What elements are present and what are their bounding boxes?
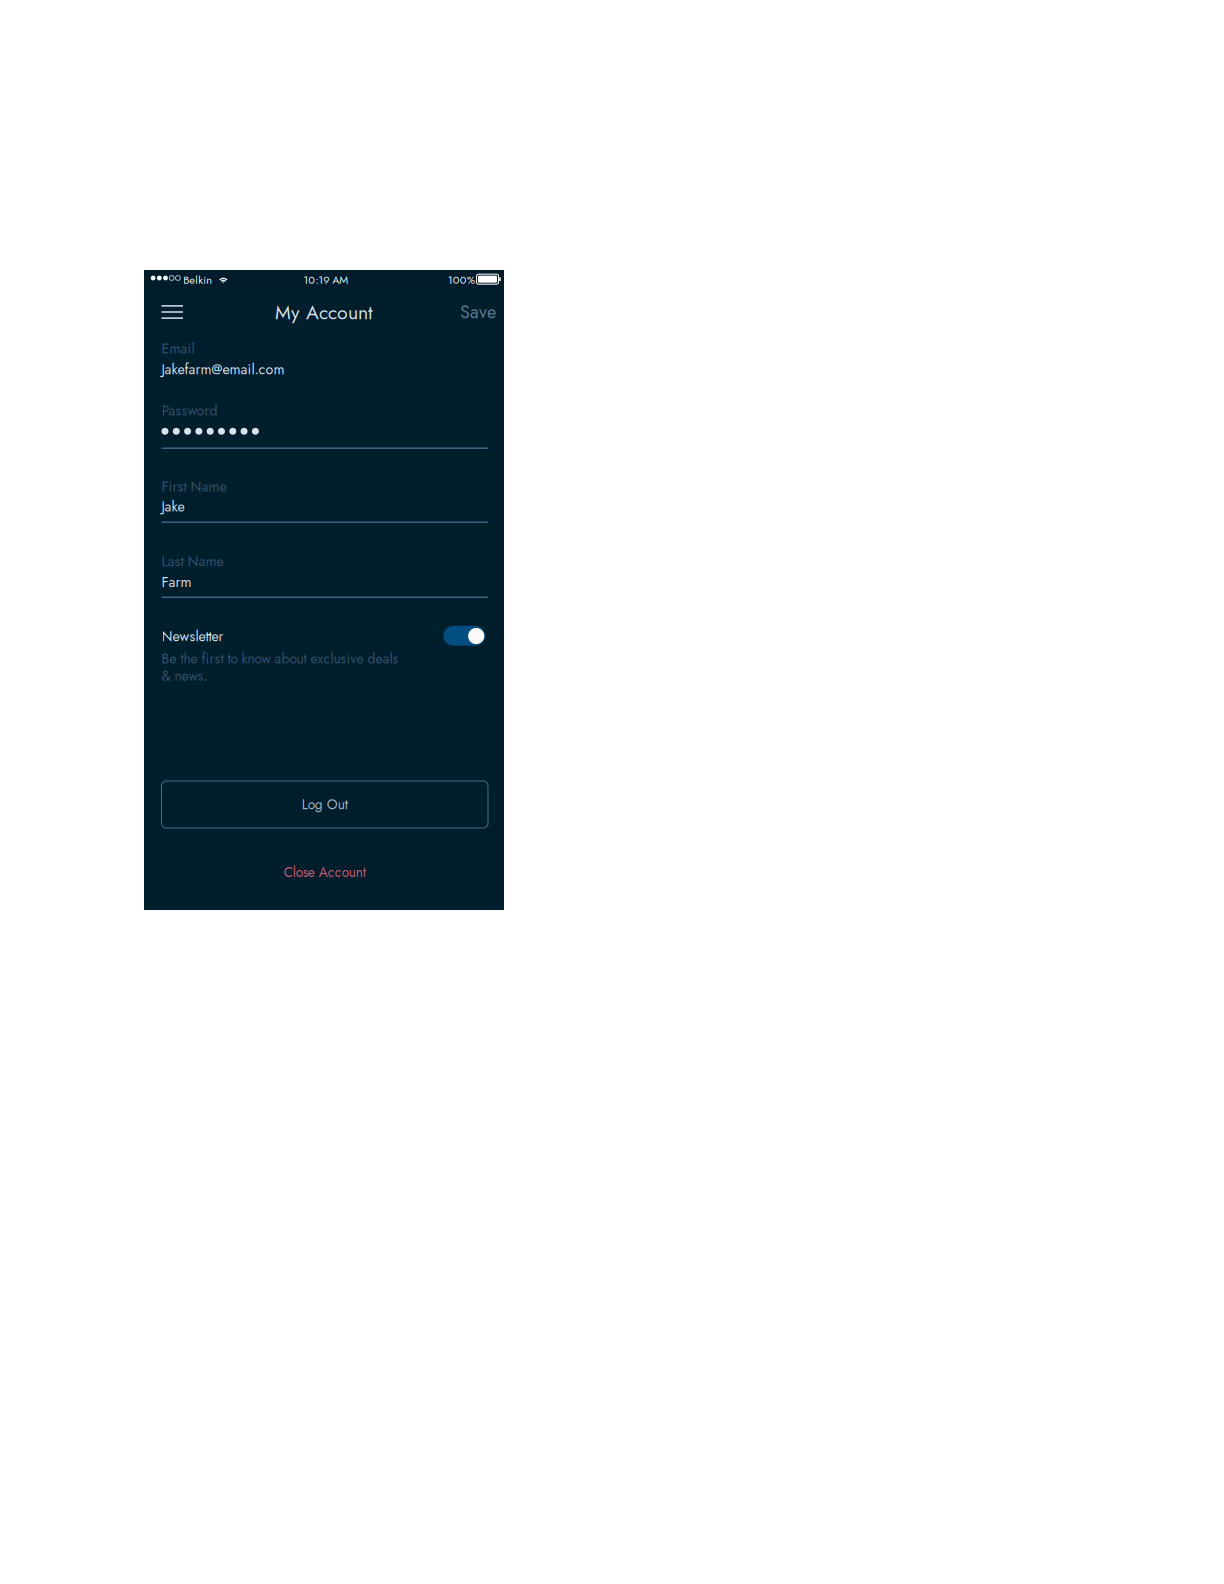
staticText: Be the first to know about exclusive dea… [161, 649, 398, 668]
staticText: Log Out [302, 795, 348, 814]
staticText: Newsletter [161, 626, 223, 646]
staticText: Password [161, 400, 217, 421]
staticText: Save [460, 299, 496, 325]
staticText: Farm [161, 572, 191, 592]
staticText: Jake [161, 496, 184, 517]
button[interactable]: Newsletter [443, 626, 485, 646]
staticText: Close Account [284, 862, 366, 882]
staticText: Belkin [183, 272, 212, 288]
button[interactable]: Log Out [161, 781, 488, 828]
staticText: First Name [161, 476, 226, 497]
staticText: & news. [161, 666, 207, 686]
staticText: 100% [448, 272, 475, 288]
button[interactable]: Save [440, 297, 496, 327]
staticText: My Account [275, 298, 373, 327]
button[interactable]: Close Account [161, 853, 488, 891]
staticText: Last Name [161, 551, 223, 571]
staticText: Email [161, 338, 194, 359]
button[interactable]: Menu [161, 295, 205, 329]
staticText: Jakefarm@email.com [161, 359, 284, 380]
staticText: 10:19 AM [303, 272, 348, 288]
